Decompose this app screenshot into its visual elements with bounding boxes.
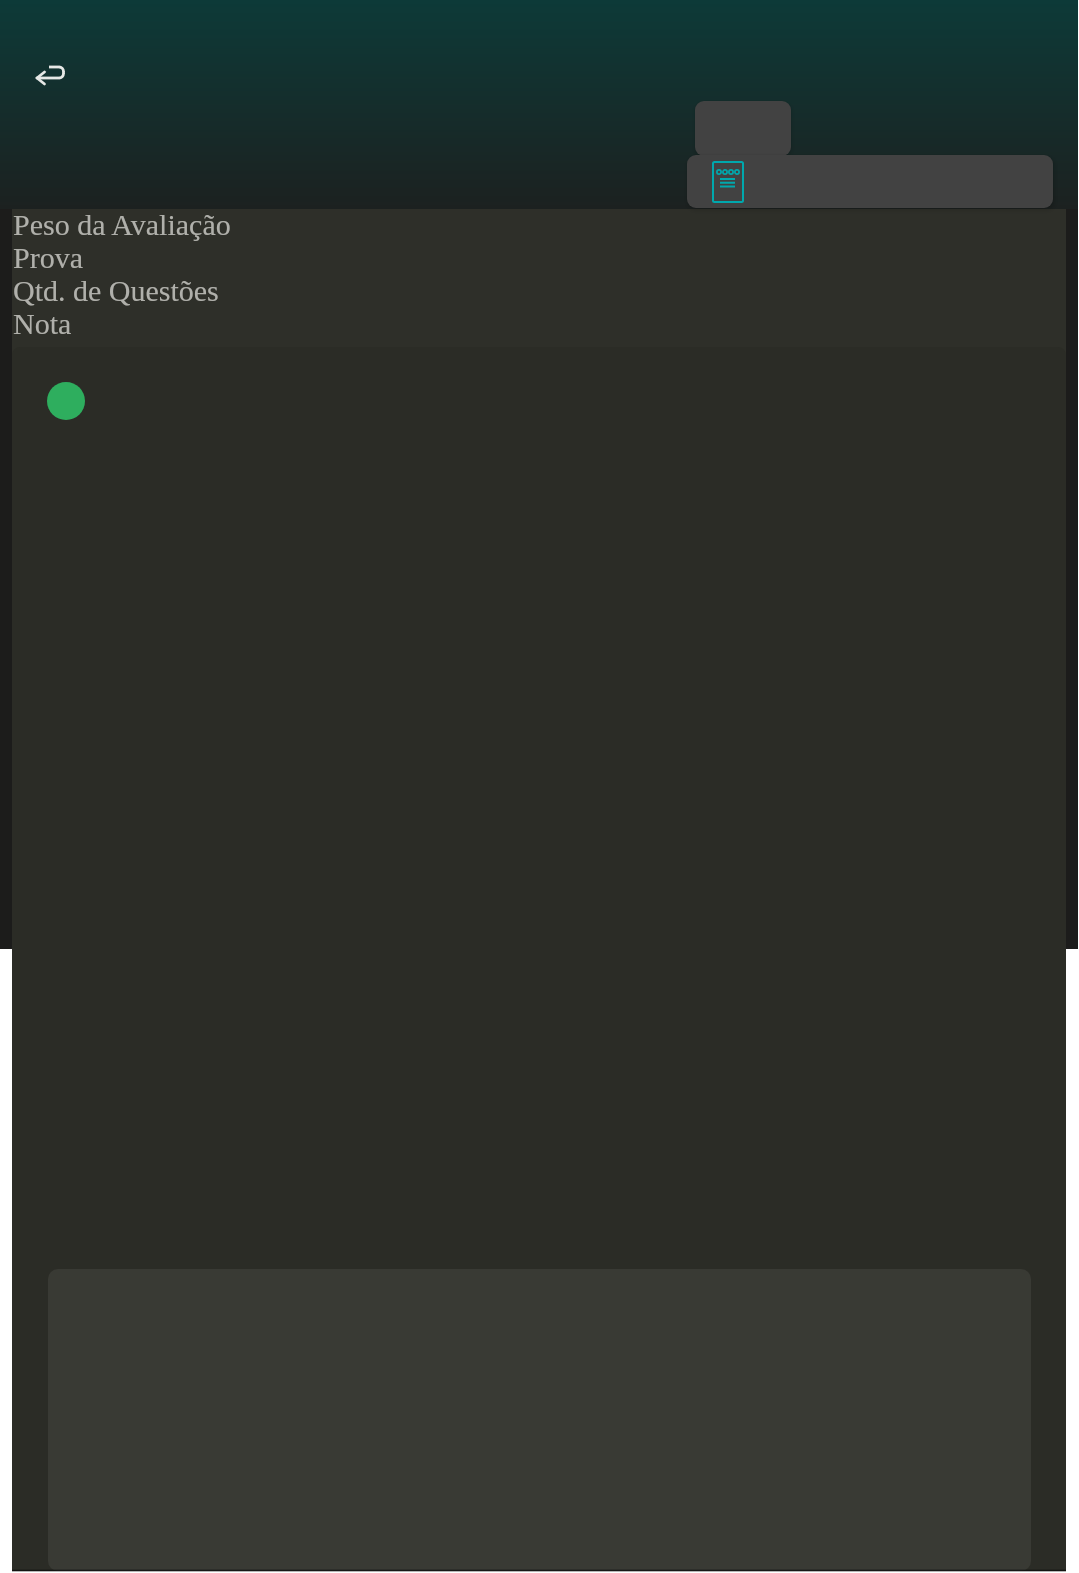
button[interactable]: Anotações bbox=[687, 155, 1053, 208]
staticText: Prova bbox=[13, 241, 83, 274]
staticText: Qtd. de Questões bbox=[13, 274, 219, 307]
button[interactable]: Voltar bbox=[27, 50, 75, 98]
staticText: Nota bbox=[13, 307, 72, 340]
staticText: Peso da Avaliação bbox=[13, 208, 231, 241]
button[interactable]: Menu bbox=[695, 101, 791, 156]
